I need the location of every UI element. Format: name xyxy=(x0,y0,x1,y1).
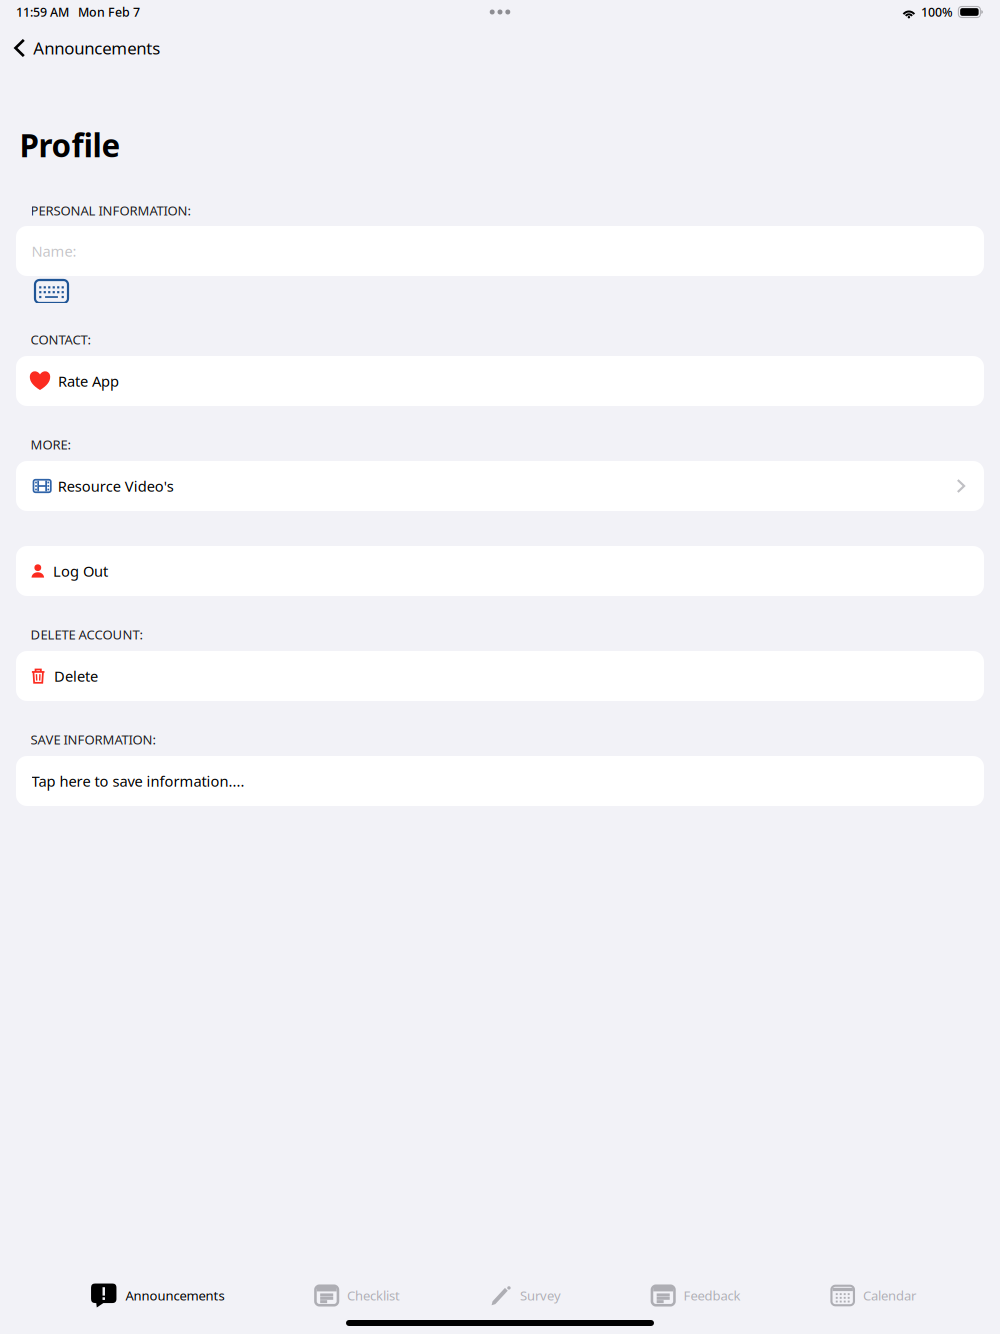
staticText: Profile xyxy=(19,124,120,166)
button[interactable]: Announcements xyxy=(91,1280,224,1310)
button[interactable]: Log Out xyxy=(0,546,1000,596)
staticText: Mon Feb 7 xyxy=(78,4,140,20)
staticText: Delete xyxy=(54,666,98,686)
staticText: Announcements xyxy=(33,37,160,59)
staticText: Name: xyxy=(31,241,76,261)
button[interactable]: Survey xyxy=(491,1280,561,1310)
button[interactable]: Rate App xyxy=(0,356,1000,406)
button[interactable]: Resource Video's xyxy=(0,461,1000,511)
staticText: DELETE ACCOUNT: xyxy=(30,626,143,643)
staticText: Survey xyxy=(520,1287,561,1304)
button[interactable]: Checklist xyxy=(315,1280,400,1310)
staticText: CONTACT: xyxy=(30,331,91,348)
staticText: Announcements xyxy=(125,1287,224,1304)
staticText: MORE: xyxy=(30,436,71,453)
staticText: PERSONAL INFORMATION: xyxy=(30,202,191,219)
staticText: Rate App xyxy=(58,371,119,391)
staticText: 11:59 AM xyxy=(16,4,69,20)
button[interactable]: Show keyboard xyxy=(35,280,68,303)
button[interactable]: Announcements xyxy=(0,24,170,72)
staticText: Checklist xyxy=(347,1287,400,1304)
button[interactable]: Feedback xyxy=(652,1280,740,1310)
staticText: 100% xyxy=(921,4,953,20)
staticText: Feedback xyxy=(683,1287,740,1304)
button[interactable]: Tap here to save information.... xyxy=(0,756,1000,806)
button[interactable]: Calendar xyxy=(831,1280,916,1310)
button[interactable]: Delete xyxy=(0,651,1000,701)
staticText: Log Out xyxy=(53,561,108,581)
staticText: Calendar xyxy=(863,1287,916,1304)
staticText: Resource Video's xyxy=(58,476,174,496)
staticText: Tap here to save information.... xyxy=(31,771,244,791)
staticText: SAVE INFORMATION: xyxy=(30,731,156,748)
